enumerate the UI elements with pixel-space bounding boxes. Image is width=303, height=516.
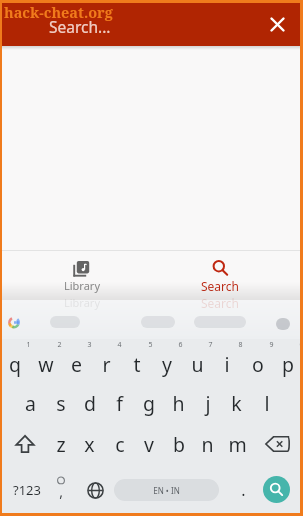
staticText: 5 xyxy=(148,340,153,350)
button[interactable]: p xyxy=(273,345,303,384)
staticText: Search xyxy=(201,295,239,311)
button[interactable]: s xyxy=(46,384,75,423)
staticText: c xyxy=(115,431,125,458)
staticText: hack-cheat.org xyxy=(4,2,113,22)
staticText: f xyxy=(116,390,123,417)
staticText: e xyxy=(71,351,82,378)
staticText: y xyxy=(162,351,172,378)
button[interactable]: e xyxy=(61,345,91,384)
button[interactable]: . xyxy=(228,472,258,508)
button[interactable] xyxy=(8,426,42,462)
button[interactable]: i xyxy=(212,345,242,384)
staticText: Search... xyxy=(49,16,111,37)
staticText: 2 xyxy=(57,340,62,350)
staticText: u xyxy=(191,351,204,378)
staticText: Library xyxy=(64,295,101,310)
button[interactable]: k xyxy=(222,384,251,423)
staticText: , xyxy=(52,482,64,501)
staticText: n xyxy=(201,431,214,458)
button[interactable]: n xyxy=(193,424,222,464)
staticText: q xyxy=(9,351,21,378)
staticText: b xyxy=(173,431,185,458)
staticText: 9 xyxy=(269,340,274,350)
button[interactable]: b xyxy=(164,424,193,464)
button[interactable]: f xyxy=(105,384,134,423)
button[interactable]: g xyxy=(134,384,163,423)
button[interactable]: t xyxy=(122,345,152,384)
staticText: 0 xyxy=(299,340,303,350)
staticText: EN • IN xyxy=(153,485,180,496)
button[interactable]: u xyxy=(182,345,212,384)
staticText: 4 xyxy=(117,340,122,350)
staticText: ?123 xyxy=(13,481,41,499)
staticText: . xyxy=(241,479,246,501)
button[interactable] xyxy=(46,252,116,298)
staticText: 6 xyxy=(178,340,183,350)
staticText: p xyxy=(282,351,294,378)
staticText: z xyxy=(56,431,66,458)
button[interactable]: d xyxy=(75,384,104,423)
staticText: t xyxy=(133,351,141,378)
button[interactable]: o xyxy=(243,345,273,384)
button[interactable]: r xyxy=(91,345,121,384)
staticText: Search xyxy=(201,278,239,294)
button[interactable]: h xyxy=(164,384,193,423)
button[interactable]: Search... xyxy=(0,0,303,46)
staticText: d xyxy=(84,390,96,417)
staticText: 1 xyxy=(26,340,31,350)
staticText: w xyxy=(38,351,54,378)
button[interactable] xyxy=(48,470,74,510)
staticText: 7 xyxy=(208,340,213,350)
button[interactable] xyxy=(261,9,293,40)
staticText: v xyxy=(144,431,154,458)
button[interactable]: l xyxy=(252,384,281,423)
staticText: 3 xyxy=(87,340,92,350)
staticText: g xyxy=(143,390,155,417)
button[interactable]: z xyxy=(46,424,75,464)
staticText: m xyxy=(228,431,247,458)
button[interactable] xyxy=(80,472,110,508)
button[interactable] xyxy=(263,476,290,503)
button[interactable]: ?123 xyxy=(6,470,48,510)
button[interactable]: a xyxy=(16,384,45,423)
button[interactable]: w xyxy=(31,345,61,384)
button[interactable]: EN • IN xyxy=(114,479,219,501)
staticText: i xyxy=(224,351,230,378)
staticText: 8 xyxy=(238,340,243,350)
button[interactable]: j xyxy=(193,384,222,423)
staticText: j xyxy=(205,390,211,417)
staticText: a xyxy=(25,390,36,417)
button[interactable]: m xyxy=(223,424,252,464)
button[interactable]: q xyxy=(0,345,30,384)
staticText: l xyxy=(264,390,270,417)
staticText: r xyxy=(102,351,111,378)
staticText: Library xyxy=(64,278,101,293)
staticText: k xyxy=(231,390,242,417)
button[interactable] xyxy=(260,426,296,462)
button[interactable] xyxy=(186,252,256,298)
staticText: x xyxy=(84,431,95,458)
button[interactable]: x xyxy=(75,424,104,464)
staticText: h xyxy=(172,390,185,417)
button[interactable]: y xyxy=(152,345,182,384)
staticText: o xyxy=(252,351,264,378)
button[interactable]: v xyxy=(134,424,163,464)
staticText: s xyxy=(56,390,66,417)
button[interactable]: c xyxy=(105,424,134,464)
